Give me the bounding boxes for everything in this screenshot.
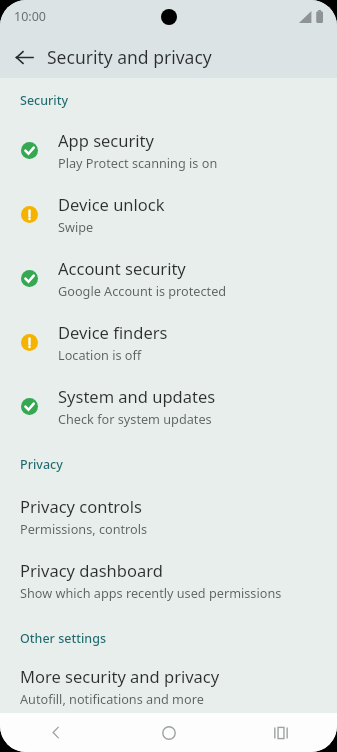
staticText: Privacy controls bbox=[20, 495, 143, 517]
staticText: Location is off bbox=[58, 346, 142, 363]
staticText: App security bbox=[58, 129, 154, 151]
button[interactable]: Back bbox=[0, 713, 113, 752]
staticText: Other settings bbox=[20, 630, 107, 647]
staticText: Play Protect scanning is on bbox=[58, 154, 218, 171]
staticText: Permissions, controls bbox=[20, 520, 148, 537]
staticText: 10:00 bbox=[14, 8, 46, 25]
staticText: Device finders bbox=[58, 321, 168, 343]
staticText: Privacy dashboard bbox=[20, 559, 163, 581]
button[interactable]: Device unlock bbox=[0, 182, 337, 246]
button[interactable]: Back bbox=[8, 41, 40, 73]
button[interactable]: Home bbox=[113, 713, 225, 752]
button[interactable]: Recent apps bbox=[225, 713, 337, 752]
staticText: Security and privacy bbox=[47, 45, 212, 69]
staticText: Autofill, notifications and more bbox=[20, 690, 204, 707]
staticText: Account security bbox=[58, 257, 186, 279]
button[interactable]: System and updates bbox=[0, 374, 337, 438]
staticText: Check for system updates bbox=[58, 410, 212, 427]
staticText: Show which apps recently used permission… bbox=[20, 584, 282, 601]
staticText: Google Account is protected bbox=[58, 282, 227, 299]
button[interactable]: App security bbox=[0, 118, 337, 182]
staticText: Privacy bbox=[20, 456, 63, 473]
staticText: Swipe bbox=[58, 218, 94, 235]
button[interactable]: Account security bbox=[0, 246, 337, 310]
button[interactable]: Privacy controls bbox=[0, 484, 337, 548]
staticText: Security bbox=[20, 92, 69, 109]
button[interactable]: More security and privacy bbox=[0, 658, 337, 713]
button[interactable]: Device finders bbox=[0, 310, 337, 374]
staticText: More security and privacy bbox=[20, 665, 220, 687]
button[interactable]: Privacy dashboard bbox=[0, 548, 337, 612]
staticText: Device unlock bbox=[58, 193, 165, 215]
staticText: System and updates bbox=[58, 385, 216, 407]
